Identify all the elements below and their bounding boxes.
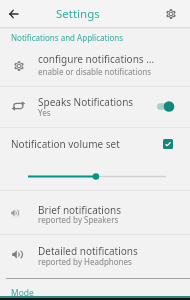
staticText: reported by Headphones bbox=[38, 256, 132, 267]
button[interactable]: Settings bbox=[157, 0, 184, 27]
button[interactable] bbox=[0, 167, 190, 186]
staticText: Settings bbox=[56, 6, 100, 22]
staticText: enable or disable notifications bbox=[38, 66, 190, 77]
staticText: Yes bbox=[38, 107, 51, 118]
button[interactable]: Speaks Notifications bbox=[0, 87, 190, 127]
staticText: Speaks Notifications bbox=[38, 95, 134, 109]
staticText: Brief notifications bbox=[38, 203, 121, 217]
staticText: Mode bbox=[11, 287, 34, 299]
button[interactable]: Detailed notifications bbox=[0, 235, 190, 278]
button[interactable]: Speaks Notifications toggle bbox=[151, 96, 177, 118]
staticText: reported by Speakers bbox=[38, 214, 119, 225]
button[interactable]: configure notifications … bbox=[0, 45, 190, 86]
staticText: Notifications and Applications bbox=[11, 32, 124, 43]
button[interactable]: Brief notifications bbox=[0, 191, 190, 234]
button[interactable]: Back bbox=[0, 0, 27, 27]
staticText: configure notifications … bbox=[38, 52, 190, 66]
staticText: Notification volume set bbox=[11, 137, 120, 151]
button[interactable]: Notification volume set bbox=[0, 128, 190, 162]
staticText: Detailed notifications bbox=[38, 244, 138, 258]
